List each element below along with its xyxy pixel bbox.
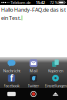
staticText: Nachricht	[3, 68, 20, 73]
staticText: Einstellungen	[44, 83, 66, 88]
staticText: Facebook	[3, 83, 19, 88]
button[interactable]: Mail	[22, 58, 44, 73]
staticText: Kopieren	[48, 68, 63, 73]
staticText: 15:42	[36, 0, 45, 5]
staticText: Hallo Handy-FAQ.de das ist	[1, 6, 66, 13]
button[interactable]: Kopieren	[44, 58, 66, 73]
staticText: Telekom.de	[11, 0, 31, 5]
button[interactable]: Record	[22, 88, 44, 100]
button[interactable]: Einstellungen	[44, 73, 66, 88]
button[interactable]: Nachricht	[0, 58, 22, 73]
staticText: Mail	[29, 68, 37, 73]
staticText: ein Test.	[1, 14, 21, 21]
staticText: f	[10, 73, 13, 83]
button[interactable]: Share	[44, 88, 66, 100]
button[interactable]: f	[0, 73, 22, 88]
button[interactable]: Twitter	[22, 73, 44, 88]
staticText: 72 %	[50, 0, 58, 5]
button[interactable]: Stop	[0, 88, 22, 100]
staticText: Twitter	[27, 83, 39, 88]
